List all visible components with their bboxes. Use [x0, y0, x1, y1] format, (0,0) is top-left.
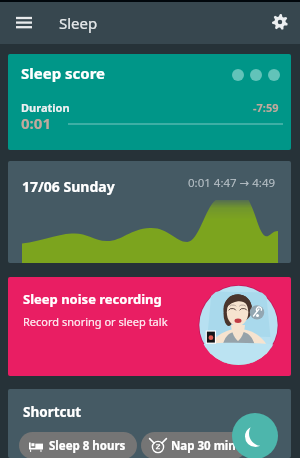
- button[interactable]: Nap 30 min: [141, 432, 247, 458]
- staticText: Record snoring or sleep talk: [23, 314, 168, 329]
- button[interactable]: Menu: [4, 3, 44, 43]
- staticText: -7:59: [253, 100, 279, 115]
- button[interactable]: Sleep noise recording: [8, 277, 291, 376]
- button[interactable]: Sleep score: [8, 54, 291, 150]
- staticText: Duration: [21, 100, 70, 115]
- staticText: 0:01: [21, 113, 51, 133]
- staticText: 0:01 4:47 → 4:49: [188, 175, 276, 191]
- button[interactable]: Sleep 8 hours: [19, 432, 137, 458]
- staticText: Shortcut: [23, 403, 82, 421]
- staticText: Sleep: [59, 13, 98, 33]
- button[interactable]: 17/06 Sunday: [8, 161, 291, 263]
- staticText: Sleep noise recording: [23, 290, 162, 308]
- staticText: Sleep 8 hours: [49, 438, 126, 454]
- staticText: 17/06 Sunday: [22, 177, 115, 196]
- button[interactable]: Settings: [256, 2, 300, 44]
- staticText: Sleep score: [21, 63, 106, 83]
- button[interactable]: Start sleep tracking: [232, 413, 278, 458]
- staticText: Nap 30 min: [171, 438, 236, 454]
